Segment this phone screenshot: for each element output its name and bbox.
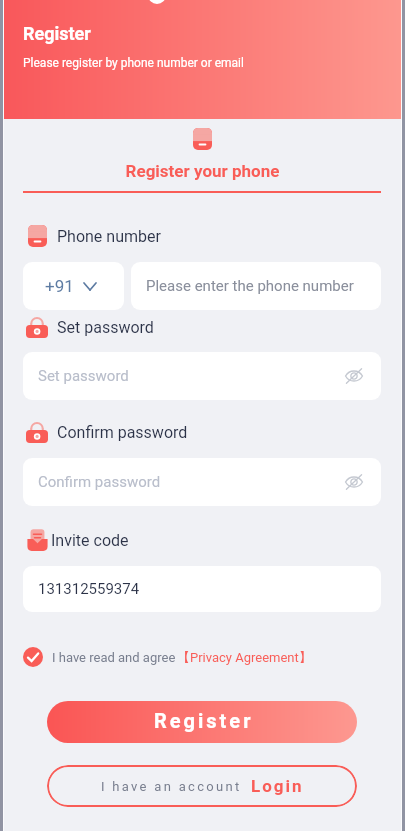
button[interactable]: Toggle password visibility	[341, 469, 367, 495]
button[interactable]: Set password	[23, 352, 381, 400]
button[interactable]: Toggle password visibility	[341, 363, 367, 389]
button[interactable]: I have an account	[47, 765, 357, 807]
staticText: Login	[251, 776, 304, 796]
staticText: Please enter the phone number	[146, 277, 354, 295]
staticText: Phone number	[57, 227, 161, 246]
staticText: Register your phone	[0, 161, 405, 181]
button[interactable]: Please enter the phone number	[131, 262, 381, 310]
staticText: I have an account	[101, 779, 242, 794]
staticText: Register	[154, 709, 254, 732]
staticText: 【Privacy Agreement】	[177, 649, 312, 665]
staticText: Please register by phone number or email	[23, 56, 244, 70]
staticText: Register	[23, 23, 91, 44]
staticText: Set password	[57, 318, 154, 337]
staticText: Set password	[38, 367, 129, 385]
staticText: 131312559374	[38, 580, 140, 598]
staticText: Invite code	[51, 531, 129, 550]
button[interactable]: Confirm password	[23, 458, 381, 506]
staticText: Confirm password	[57, 423, 188, 442]
button[interactable]: I have read and agree	[23, 645, 312, 669]
button[interactable]: +91	[23, 262, 124, 310]
staticText: Confirm password	[38, 473, 161, 491]
button[interactable]: 131312559374	[23, 566, 381, 612]
staticText: I have read and agree	[52, 650, 176, 665]
staticText: +91	[45, 276, 74, 296]
button[interactable]: Register	[47, 701, 357, 743]
